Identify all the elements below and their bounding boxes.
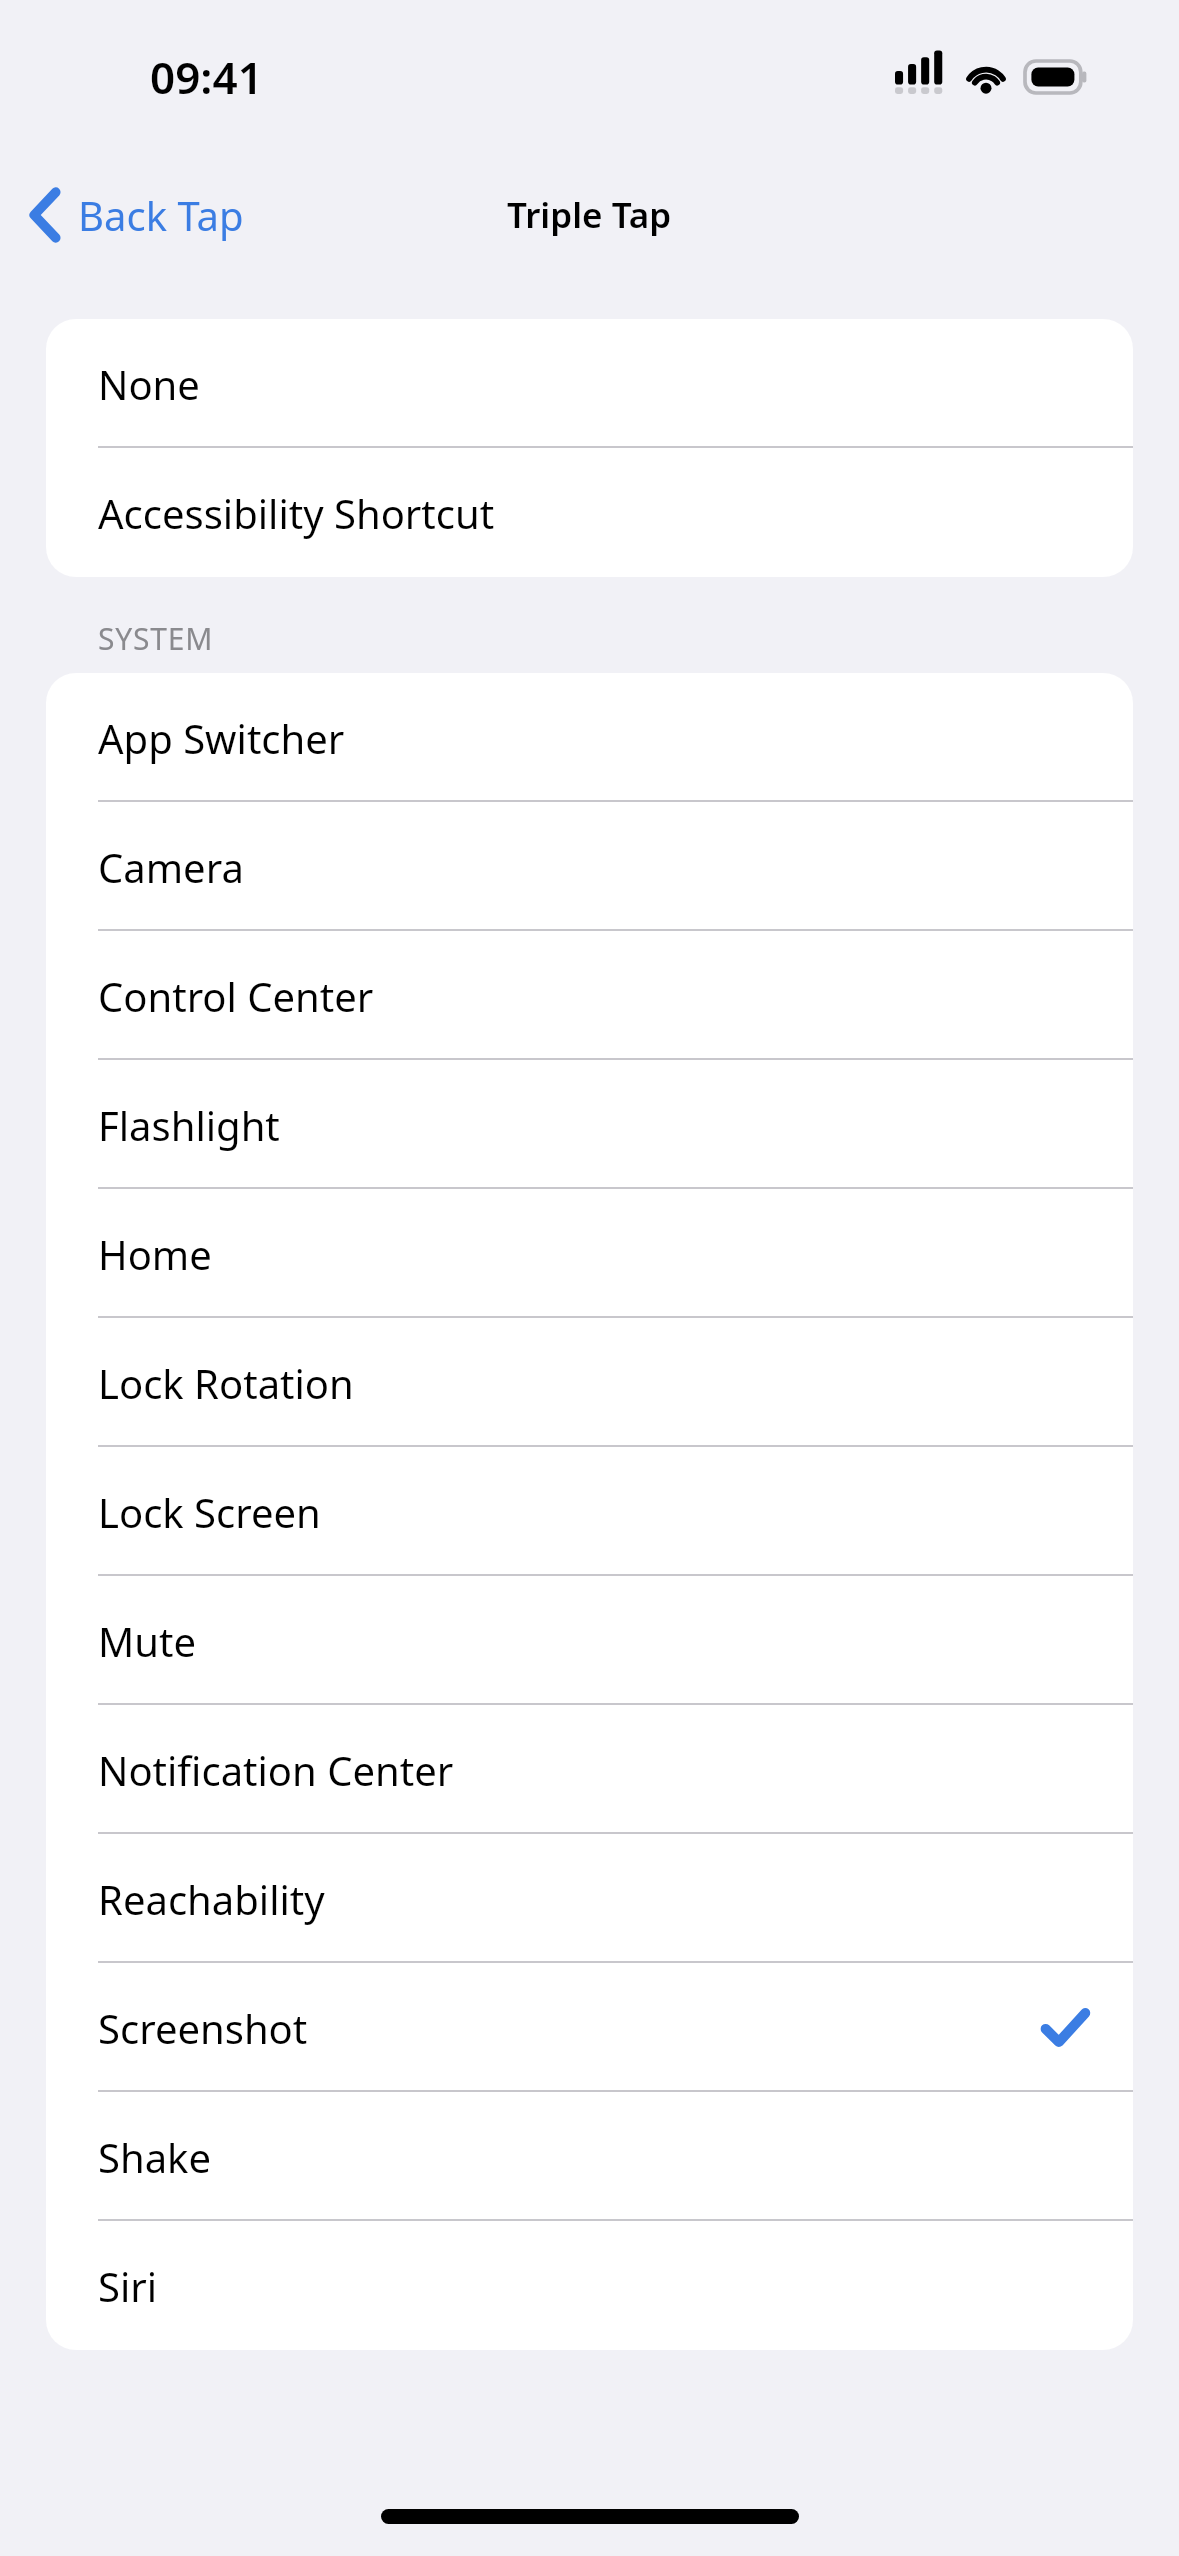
button[interactable]: None [46, 319, 1133, 448]
button[interactable]: Reachability [46, 1834, 1133, 1963]
button[interactable]: App Switcher [46, 673, 1133, 802]
button[interactable]: Flashlight [46, 1060, 1133, 1189]
staticText: Mute [98, 1614, 196, 1668]
button[interactable]: Lock Rotation [46, 1318, 1133, 1447]
button[interactable]: Shake [46, 2092, 1133, 2221]
button[interactable]: Siri [46, 2221, 1133, 2350]
button[interactable]: Notification Center [46, 1705, 1133, 1834]
staticText: App Switcher [98, 711, 345, 765]
staticText: Camera [98, 840, 244, 894]
button[interactable]: Control Center [46, 931, 1133, 1060]
staticText: Screenshot [98, 2001, 308, 2055]
staticText: Notification Center [98, 1743, 454, 1797]
other: Selected [1043, 2006, 1087, 2050]
staticText: Flashlight [98, 1098, 280, 1152]
staticText: Reachability [98, 1872, 325, 1926]
staticText: SYSTEM [98, 618, 214, 659]
button[interactable]: Screenshot [46, 1963, 1133, 2092]
staticText: Accessibility Shortcut [98, 486, 495, 540]
staticText: 09:41 [150, 47, 263, 107]
button[interactable]: Lock Screen [46, 1447, 1133, 1576]
staticText: Shake [98, 2130, 212, 2184]
staticText: Lock Screen [98, 1485, 321, 1539]
button[interactable]: Home [46, 1189, 1133, 1318]
staticText: Back Tap [78, 188, 244, 242]
staticText: Home [98, 1227, 212, 1281]
staticText: None [98, 357, 200, 411]
button[interactable]: Camera [46, 802, 1133, 931]
button[interactable]: Accessibility Shortcut [46, 448, 1133, 577]
button[interactable]: Back Tap [22, 180, 252, 250]
staticText: Triple Tap [507, 191, 672, 239]
button[interactable]: Mute [46, 1576, 1133, 1705]
staticText: Siri [98, 2259, 158, 2313]
staticText: Control Center [98, 969, 374, 1023]
staticText: Lock Rotation [98, 1356, 354, 1410]
